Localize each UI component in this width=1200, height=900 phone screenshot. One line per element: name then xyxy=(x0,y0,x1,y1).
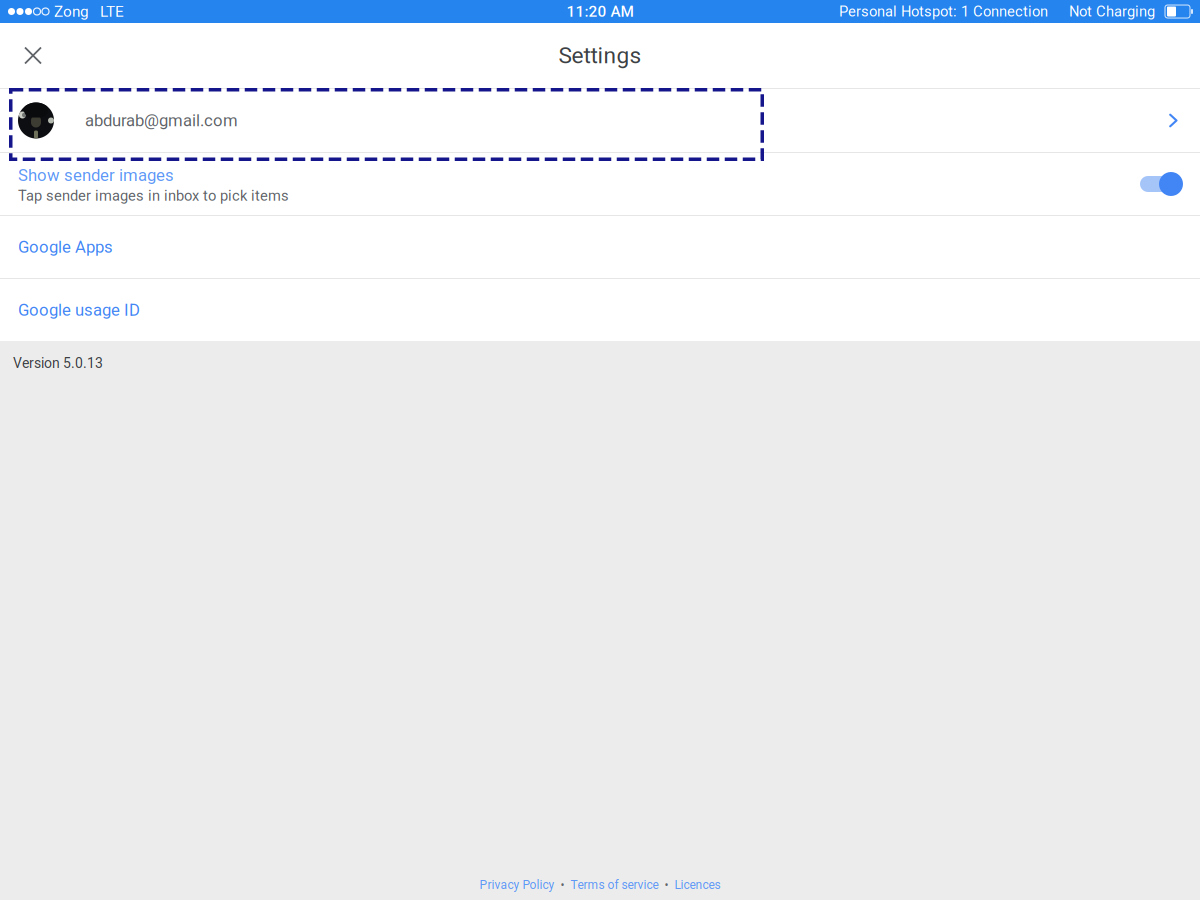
staticText: Tap sender images in inbox to pick items xyxy=(18,187,289,204)
button[interactable]: Show sender images xyxy=(0,153,1200,215)
button[interactable]: Google usage ID xyxy=(0,279,1200,341)
staticText: Google usage ID xyxy=(18,300,140,320)
staticText: Personal Hotspot: 1 Connection xyxy=(839,3,1048,20)
button[interactable]: Close xyxy=(11,33,55,77)
button[interactable]: Terms of service xyxy=(570,878,658,892)
button[interactable]: Google Apps xyxy=(0,216,1200,278)
button[interactable]: abdurab@gmail.com xyxy=(0,89,1200,152)
staticText: Terms of service xyxy=(570,878,658,892)
staticText: Settings xyxy=(558,42,641,69)
staticText: Zong xyxy=(54,2,89,20)
button[interactable]: Privacy Policy xyxy=(479,878,554,892)
staticText: Licences xyxy=(674,878,720,892)
staticText: 11:20 AM xyxy=(566,2,633,20)
staticText: Show sender images xyxy=(18,166,174,185)
staticText: Google Apps xyxy=(18,237,113,257)
staticText: Version 5.0.13 xyxy=(13,355,103,371)
staticText: abdurab@gmail.com xyxy=(85,111,238,130)
staticText: • xyxy=(664,878,668,892)
staticText: Privacy Policy xyxy=(479,878,554,892)
staticText: • xyxy=(560,878,564,892)
button[interactable]: Licences xyxy=(674,878,720,892)
staticText: Not Charging xyxy=(1069,3,1155,20)
staticText: LTE xyxy=(100,2,124,20)
